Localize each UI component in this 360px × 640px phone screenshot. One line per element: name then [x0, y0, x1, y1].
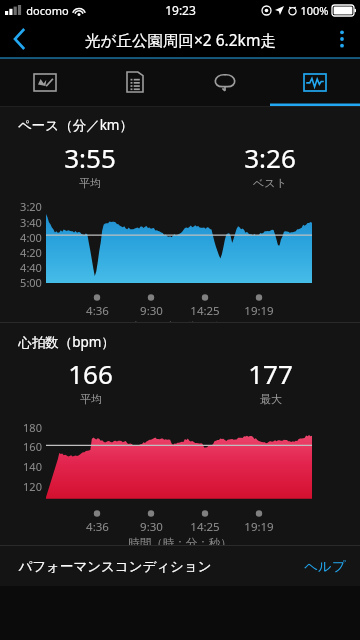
staticText: 平均	[80, 392, 102, 406]
staticText: 19:19	[244, 303, 274, 319]
staticText: 時間（時：分：秒）	[128, 536, 232, 545]
staticText: 光が丘公園周回×2 6.2km走	[85, 29, 276, 50]
staticText: docomo	[26, 3, 69, 18]
staticText: 3:20	[20, 199, 42, 214]
staticText: 4:40	[20, 260, 42, 275]
staticText: 19:19	[244, 519, 274, 535]
button[interactable]: Laps tab	[180, 58, 270, 106]
staticText: ペース（分／km）	[18, 116, 133, 134]
staticText: 14:25	[190, 303, 220, 319]
staticText: 4:20	[20, 245, 42, 260]
button[interactable]: Charts tab	[270, 58, 360, 106]
staticText: 5:00	[20, 275, 42, 290]
staticText: 4:36	[86, 519, 109, 535]
staticText: 140	[23, 459, 42, 474]
button[interactable]: パフォーマンスコンディション	[0, 546, 360, 586]
staticText: ヘルプ	[304, 558, 346, 575]
staticText: 4:36	[86, 303, 109, 319]
staticText: 19:23	[165, 2, 196, 18]
button[interactable]: Map tab	[0, 58, 90, 106]
staticText: 180	[23, 420, 42, 435]
staticText: 9:30	[140, 303, 163, 319]
staticText: 14:25	[190, 519, 220, 535]
staticText: ベスト	[253, 176, 287, 190]
staticText: 心拍数（bpm）	[18, 333, 115, 351]
staticText: 100%	[300, 3, 329, 18]
staticText: 最大	[260, 392, 282, 406]
staticText: 時間（時：分：秒）	[128, 320, 232, 322]
staticText: パフォーマンスコンディション	[18, 558, 212, 575]
staticText: 4:00	[20, 230, 42, 245]
staticText: 120	[23, 479, 42, 494]
staticText: 166	[68, 356, 113, 391]
button[interactable]: Back	[0, 20, 40, 58]
staticText: 平均	[79, 176, 101, 190]
staticText: 9:30	[140, 519, 163, 535]
staticText: 177	[248, 356, 293, 391]
button[interactable]: More options	[324, 20, 360, 58]
staticText: 3:40	[20, 215, 42, 230]
staticText: 3:26	[244, 140, 296, 175]
button[interactable]: Details tab	[90, 58, 180, 106]
staticText: 3:55	[64, 140, 116, 175]
staticText: 160	[23, 439, 42, 454]
